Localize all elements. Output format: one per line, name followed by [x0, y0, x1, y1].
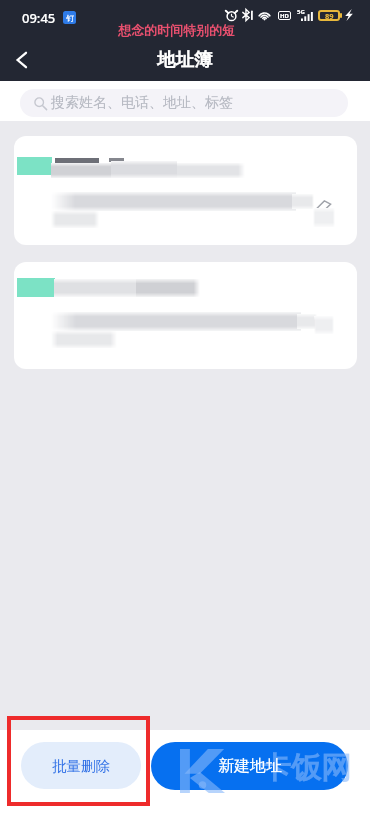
staticText: 地址簿	[157, 48, 213, 71]
staticText: 5G	[297, 8, 305, 16]
staticText: 批量删除	[52, 757, 110, 775]
staticText: 新建地址	[218, 756, 282, 776]
staticText: 卡饭网	[261, 749, 351, 787]
button[interactable]: 搜索姓名、电话、地址、标签	[20, 89, 348, 117]
button[interactable]: Edit	[14, 136, 357, 245]
button[interactable]: 批量删除	[21, 742, 141, 789]
button[interactable]: Edit	[312, 198, 334, 214]
button[interactable]: Back	[0, 38, 44, 81]
staticText: 钉	[66, 13, 74, 23]
staticText: 想念的时间特别的短	[118, 22, 235, 38]
button[interactable]	[14, 262, 357, 369]
staticText: 搜索姓名、电话、地址、标签	[51, 94, 233, 112]
staticText: 89	[325, 11, 334, 21]
button[interactable]: 新建地址	[151, 742, 348, 790]
staticText: HD	[280, 12, 289, 20]
staticText: 09:45	[22, 9, 56, 27]
